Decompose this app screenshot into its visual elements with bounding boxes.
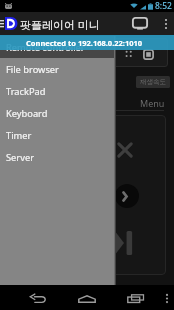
button[interactable]: Keyboard (0, 102, 116, 124)
button[interactable]: File browser (0, 58, 116, 80)
button[interactable]: Remote controller (0, 36, 116, 58)
button[interactable]: Play (115, 184, 139, 208)
button[interactable]: 재생속도 (136, 76, 170, 88)
staticText: TrackPad (6, 85, 46, 98)
staticText: Menu (140, 97, 165, 109)
staticText: 재생속도 (140, 78, 166, 86)
button[interactable]: Home (71, 285, 103, 310)
button[interactable]: Back (22, 285, 54, 310)
button[interactable]: More options (158, 12, 174, 35)
staticText: Timer (6, 129, 32, 142)
staticText: 8:52 (155, 0, 172, 12)
staticText: Keyboard (6, 107, 48, 120)
button[interactable]: Server (0, 146, 116, 168)
staticText: Connected to 192.168.0.22:1010 (26, 38, 143, 48)
button[interactable]: Menu (158, 285, 174, 310)
staticText: 팟플레이어 미니 (20, 17, 100, 32)
button[interactable]: TrackPad (0, 80, 116, 102)
staticText: File browser (6, 63, 59, 76)
button[interactable]: Cast to screen (128, 12, 152, 35)
staticText: Server (6, 151, 34, 164)
button[interactable]: Timer (0, 124, 116, 146)
button[interactable]: Recent apps (119, 285, 151, 310)
staticText: Remote controller (6, 41, 85, 54)
